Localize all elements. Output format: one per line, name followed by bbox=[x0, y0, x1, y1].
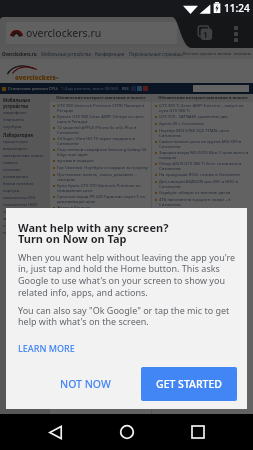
staticText: Зарядки аккум MS GS70 Elite: 5 цена всег… bbox=[159, 150, 251, 160]
staticText: Из GTX 970 4ОЗВЕЗ/980 в Ситилинке bbox=[57, 237, 132, 243]
staticText: Купите GTX 980 Zotac AMP! Omega по цене … bbox=[57, 114, 149, 124]
staticText: 11:24 bbox=[224, 1, 250, 15]
button[interactable]: overclockers.ru bbox=[6, 22, 177, 44]
staticText: Обзор ASUS GTX 980 Ti Strix: готов всех … bbox=[159, 161, 251, 171]
staticText: охлаждения bbox=[3, 174, 28, 180]
button[interactable]: Tabs bbox=[196, 25, 213, 42]
staticText: планшеты bbox=[3, 117, 25, 123]
staticText: RSS bbox=[122, 86, 129, 91]
staticText: для модели bbox=[57, 255, 82, 261]
staticText: AOC 24 дюйма: 144 Гц за недорого в Ситил… bbox=[159, 229, 251, 239]
staticText: накопители SSD bbox=[3, 195, 36, 201]
staticText: 1.4 до разгона, всего 30/365 bbox=[61, 86, 119, 92]
staticText: When you want help without leaving the a… bbox=[18, 251, 240, 299]
staticText: компании bbox=[234, 51, 253, 56]
staticText: GTX 980 Gamrock Premium CITRI Палитра в … bbox=[57, 103, 149, 113]
staticText: блоки питания bbox=[3, 181, 34, 187]
staticText: периферия bbox=[3, 223, 26, 229]
staticText: процессоры bbox=[3, 139, 28, 145]
staticText: Срочный заряд РК 240 Гарантия через 5 по… bbox=[57, 194, 149, 204]
button[interactable]: NOT NOW bbox=[48, 367, 123, 401]
staticText: сетевое оборудование bbox=[3, 209, 49, 215]
staticText: overclockers.ru bbox=[26, 26, 102, 40]
staticText: Want help with any screen? Turn on Now o… bbox=[18, 220, 169, 246]
staticText: мониторы bbox=[3, 216, 24, 222]
staticText: Лучшие цены на GTX 980 Ti bbox=[57, 219, 113, 225]
staticText: видеокарты bbox=[3, 146, 28, 152]
staticText: Мобильные bbox=[3, 97, 31, 103]
staticText: Overclockers.ru bbox=[2, 51, 37, 57]
staticText: Жмем в Регарде bbox=[57, 205, 91, 211]
staticText: Персональные страницы bbox=[129, 51, 183, 57]
staticText: .ru bbox=[53, 75, 59, 80]
staticText: Его RTX RC 980Ряд 140 в Ситилинке недоро… bbox=[57, 226, 149, 236]
staticText: 1 bbox=[203, 29, 208, 40]
staticText: Где Связной: Ноутбуки и подарок за покуп… bbox=[57, 165, 148, 171]
button[interactable]: GET STARTED bbox=[141, 367, 237, 401]
staticText: На продукции ROG: готовы в Ситилинке bbox=[159, 172, 241, 178]
staticText: Под пленкой смартфона Samsung Galaxy S6 … bbox=[57, 147, 149, 157]
staticText: Ноутбук MSI GT80 SQ2 TITAN: цена Ситилин… bbox=[159, 128, 251, 138]
staticText: Мобильные устройства bbox=[41, 51, 91, 57]
staticText: overclockers bbox=[15, 73, 56, 81]
staticText: NOT NOW bbox=[60, 377, 111, 391]
staticText: ноутбуки bbox=[3, 124, 22, 130]
staticText: Оргтехника: панель, сканы, дешевеет – см… bbox=[57, 172, 149, 182]
staticText: Док-станции AXAGON для SSD и HDD в Ситил… bbox=[159, 179, 251, 189]
staticText: 4ТБ накопители в дороге: какой – в Ситил… bbox=[159, 197, 251, 207]
staticText: You can also say "Ok Google" or tap the … bbox=[18, 304, 240, 328]
staticText: Грамм новых лучше по соотношению цена/ка… bbox=[57, 262, 149, 272]
staticText: корпуса bbox=[3, 188, 20, 194]
staticText: купцам в подарок bbox=[57, 158, 94, 164]
staticText: Xperia Z6 с Ситилинка bbox=[159, 121, 204, 127]
staticText: GTX 970 - SATNAKE сравнение два bbox=[159, 114, 228, 120]
staticText: Забери для ПК с NVIDIA и Ситилинке bbox=[159, 222, 235, 228]
staticText: 34 Super Ultra HD TV экран недорого в Си… bbox=[57, 136, 149, 146]
staticText: материнские платы bbox=[3, 153, 44, 159]
staticText: Объявления интернет-магазина в анонсе bbox=[56, 95, 146, 101]
button[interactable]: LEARN MORE bbox=[18, 342, 75, 354]
staticText: системы bbox=[3, 167, 21, 173]
staticText: MSI GTX 970 - лучшее предложение каждого… bbox=[57, 244, 149, 254]
staticText: Вестник лучшего железа bbox=[183, 51, 232, 56]
button[interactable]: Back bbox=[39, 416, 71, 448]
staticText: Статистика разгона CPU: bbox=[8, 86, 59, 92]
staticText: смартфоны bbox=[3, 110, 27, 116]
button[interactable]: More options bbox=[230, 24, 242, 43]
staticText: устройства bbox=[3, 103, 29, 109]
staticText: GET STARTED bbox=[156, 377, 222, 391]
staticText: Конференция bbox=[95, 51, 125, 57]
button[interactable]: Recents bbox=[182, 416, 214, 448]
button[interactable]: Home bbox=[111, 416, 143, 448]
staticText: GTX 980 Ti Zotac AMP! Extreme – запуск н… bbox=[159, 103, 251, 113]
staticText: Лаборатория bbox=[3, 132, 33, 138]
staticText: программы bbox=[3, 230, 27, 236]
staticText: память bbox=[3, 160, 18, 166]
staticText: Объявления интернет-магазина в анонсе bbox=[158, 95, 248, 101]
staticText: LEARN MORE bbox=[18, 342, 75, 354]
staticText: 12 моделей APPLE iPhone 6s и 6s Plus в С… bbox=[57, 125, 149, 135]
staticText: Gigabyte: обзоры от жесткие диски bbox=[159, 190, 231, 196]
staticText: Купи брать GTX 970 Gamrock Premium по не… bbox=[57, 183, 149, 193]
staticText: накопители HDD bbox=[3, 202, 38, 208]
staticText: Самые низкие цены на крутой MSI X99 в Си… bbox=[159, 139, 251, 149]
